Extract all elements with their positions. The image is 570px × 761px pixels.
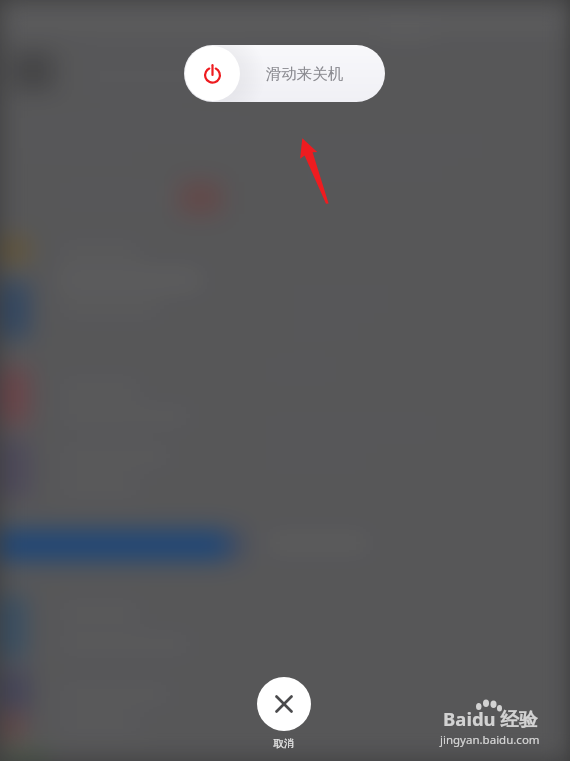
other: 取消 (257, 677, 311, 731)
staticText: Baidu 经验 (443, 706, 538, 731)
staticText: 滑动来关机 (236, 64, 373, 84)
staticText: 取消 (247, 737, 321, 750)
staticText: jingyan.baidu.com (440, 732, 540, 748)
button[interactable]: 滑动来关机 (184, 45, 385, 102)
button[interactable]: 取消 (247, 677, 321, 750)
other: Power (202, 63, 224, 85)
